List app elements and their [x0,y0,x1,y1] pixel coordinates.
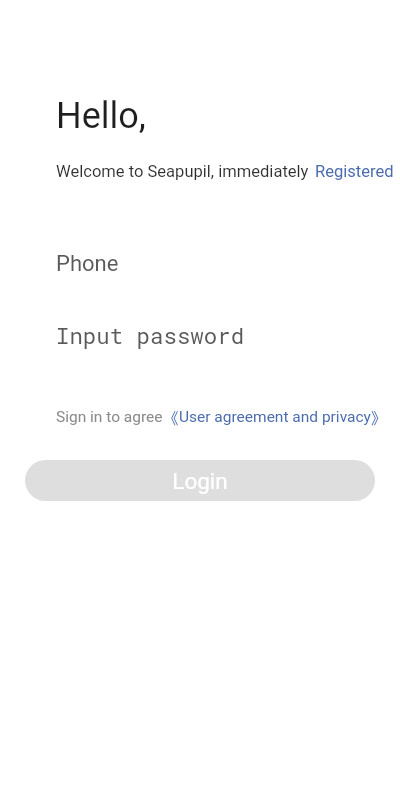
staticText: Registered [315,162,394,181]
button[interactable]: Login [25,460,375,501]
staticText: 》 [371,406,387,428]
button[interactable]: 《 [163,406,387,428]
staticText: Welcome to Seapupil, immediately [56,162,309,181]
staticText: 《 [163,406,179,428]
staticText: Phone [56,251,119,277]
button[interactable]: Registered [315,162,394,181]
staticText: Hello, [56,95,146,137]
staticText: Sign in to agree [56,408,163,426]
staticText: Login [172,468,228,494]
button[interactable]: Input password [0,316,400,356]
staticText: User agreement and privacy [179,408,371,426]
staticText: Input password [56,321,245,351]
button[interactable]: Phone [0,244,400,284]
